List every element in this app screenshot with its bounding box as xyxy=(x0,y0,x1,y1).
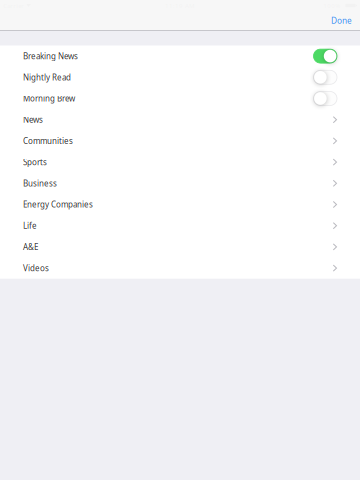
staticText: A&E xyxy=(23,241,38,252)
button[interactable]: Videos xyxy=(0,257,360,279)
button[interactable]: Business xyxy=(0,173,360,194)
staticText: News xyxy=(23,114,43,125)
button[interactable]: A&E xyxy=(0,236,360,257)
button[interactable]: Energy Companies xyxy=(0,194,360,215)
staticText: Morning Brew xyxy=(23,93,75,104)
staticText: Life xyxy=(23,220,37,231)
button[interactable]: News xyxy=(0,109,360,130)
button[interactable]: Sports xyxy=(0,151,360,173)
button[interactable]: Done xyxy=(326,11,355,30)
staticText: Videos xyxy=(23,263,49,274)
staticText: Done xyxy=(331,15,352,26)
button[interactable]: Life xyxy=(0,215,360,236)
button[interactable]: Morning Brew xyxy=(0,88,360,109)
staticText: Business xyxy=(23,178,57,189)
staticText: Energy Companies xyxy=(23,199,93,210)
staticText: Communities xyxy=(23,135,73,146)
button[interactable]: Nightly Read xyxy=(0,67,360,88)
staticText: Nightly Read xyxy=(23,72,71,83)
button[interactable]: Communities xyxy=(0,130,360,151)
button[interactable]: Breaking News xyxy=(0,45,360,67)
staticText: Breaking News xyxy=(23,51,78,62)
staticText: Sports xyxy=(23,157,47,168)
